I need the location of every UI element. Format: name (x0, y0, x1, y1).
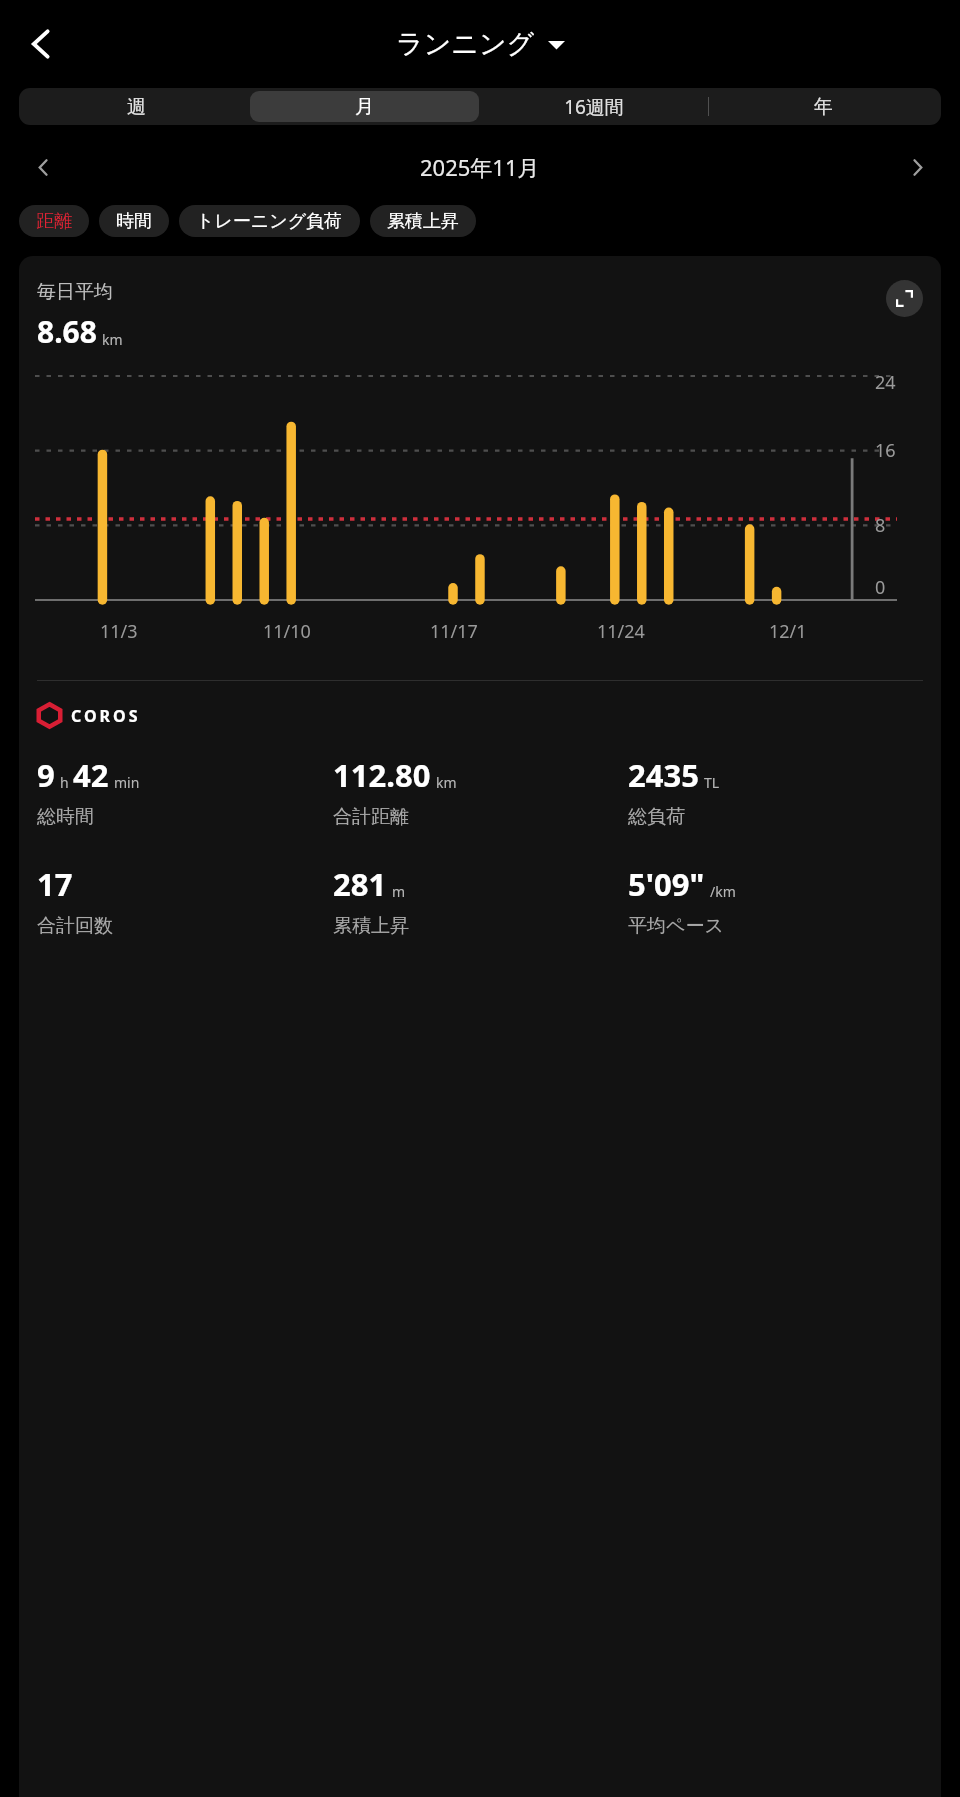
staticText: ランニング (396, 27, 535, 61)
button[interactable]: ランニング (396, 27, 565, 61)
button[interactable]: Previous month (22, 149, 64, 185)
button[interactable]: Back (12, 15, 70, 73)
button[interactable]: Expand chart (886, 280, 923, 317)
staticText: 月 (355, 95, 374, 119)
staticText: 17 (37, 863, 73, 905)
staticText: 2025年11月 (420, 152, 540, 182)
staticText: 年 (814, 95, 833, 119)
staticText: 合計回数 (37, 914, 113, 938)
staticText: min (114, 773, 140, 792)
button[interactable]: 112.80 (333, 754, 628, 829)
staticText: 11/3 (100, 619, 138, 644)
staticText: 総時間 (37, 805, 94, 829)
staticText: 総負荷 (628, 805, 685, 829)
staticText: 平均ペース (628, 914, 724, 938)
button[interactable]: 距離 (19, 205, 89, 237)
button[interactable]: 月 (250, 91, 479, 122)
staticText: 累積上昇 (333, 914, 409, 938)
staticText: COROS (71, 705, 141, 727)
staticText: km (102, 330, 123, 349)
button[interactable]: 2435 (628, 754, 923, 829)
button[interactable]: 17 (37, 863, 333, 938)
button[interactable]: 時間 (99, 205, 169, 237)
button[interactable]: 週 (22, 91, 250, 122)
button[interactable]: 累積上昇 (370, 205, 476, 237)
staticText: 8 (875, 513, 886, 538)
button[interactable]: 16週間 (479, 91, 708, 122)
button[interactable]: 281 (333, 863, 628, 938)
staticText: 5'09" (628, 863, 705, 905)
staticText: 毎日平均 (37, 280, 113, 304)
button[interactable]: 5'09" (628, 863, 923, 938)
staticText: 時間 (116, 210, 152, 233)
staticText: 112.80 (333, 754, 431, 796)
staticText: 16 (875, 438, 896, 463)
button[interactable]: 年 (709, 91, 938, 122)
staticText: 11/24 (597, 619, 645, 644)
staticText: 合計距離 (333, 805, 409, 829)
staticText: 8.68 (37, 311, 97, 352)
staticText: 16週間 (564, 94, 624, 120)
staticText: 週 (127, 95, 146, 119)
staticText: 11/17 (430, 619, 478, 644)
staticText: 281 (333, 863, 387, 905)
staticText: 2435 (628, 754, 699, 796)
button[interactable]: トレーニング負荷 (179, 205, 360, 237)
staticText: 0 (875, 575, 886, 600)
staticText: 累積上昇 (387, 210, 459, 233)
button[interactable]: Next month (896, 149, 938, 185)
staticText: 9 (37, 754, 55, 796)
staticText: km (436, 773, 457, 792)
staticText: h (60, 773, 69, 792)
staticText: 11/10 (263, 619, 311, 644)
staticText: /km (710, 882, 736, 901)
staticText: 距離 (36, 210, 72, 233)
button[interactable]: 9 (37, 754, 333, 829)
staticText: 24 (875, 370, 896, 395)
staticText: TL (704, 773, 720, 792)
staticText: m (392, 882, 406, 901)
staticText: 12/1 (769, 619, 807, 644)
staticText: 42 (73, 754, 109, 796)
staticText: トレーニング負荷 (196, 210, 343, 233)
